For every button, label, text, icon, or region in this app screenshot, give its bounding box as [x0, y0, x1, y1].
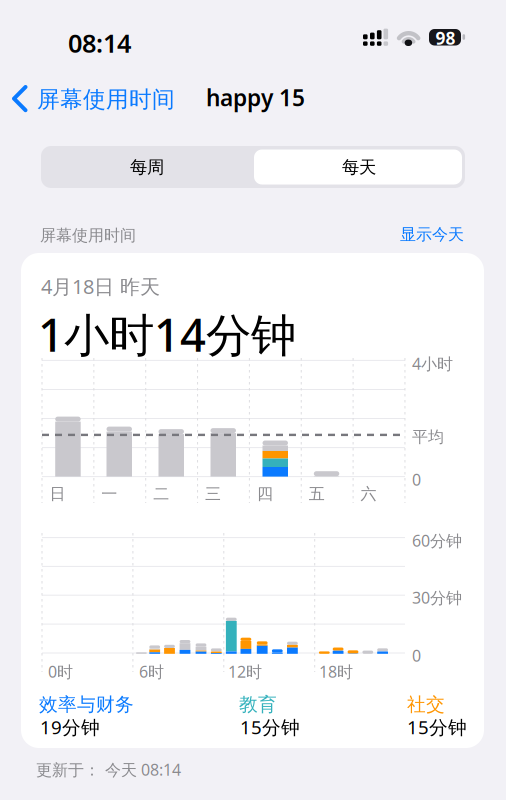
staticText: 三	[205, 484, 221, 504]
staticText: 社交	[407, 693, 445, 716]
staticText: 4月18日 昨天	[41, 273, 160, 300]
staticText: 0	[412, 469, 421, 490]
staticText: 每天	[342, 156, 376, 178]
button[interactable]: 每天	[0, 0, 506, 800]
staticText: 4小时	[412, 353, 453, 374]
staticText: 效率与财务	[39, 693, 134, 716]
staticText: 15分钟	[240, 714, 300, 739]
staticText: 屏幕使用时间	[37, 85, 175, 113]
staticText: 1小时14分钟	[38, 304, 296, 364]
staticText: 6时	[139, 661, 164, 682]
staticText: 12时	[228, 661, 262, 682]
staticText: 显示今天	[400, 224, 464, 244]
staticText: 一	[101, 484, 117, 504]
staticText: 教育	[239, 693, 277, 716]
staticText: 五	[309, 484, 325, 504]
staticText: 更新于： 今天 08:14	[36, 759, 181, 780]
staticText: 0时	[48, 661, 73, 682]
staticText: 日	[49, 484, 65, 504]
staticText: 98	[435, 26, 455, 49]
button[interactable]: 显示今天	[0, 0, 506, 800]
staticText: 19分钟	[40, 714, 100, 739]
button[interactable]: 每周	[0, 0, 506, 800]
staticText: 六	[361, 484, 377, 504]
staticText: 每周	[130, 156, 164, 178]
staticText: 二	[153, 484, 169, 504]
staticText: 15分钟	[407, 714, 467, 739]
staticText: happy 15	[206, 82, 305, 113]
staticText: 屏幕使用时间	[40, 225, 136, 245]
staticText: 四	[257, 484, 273, 504]
staticText: 0	[412, 645, 421, 666]
staticText: 18时	[319, 661, 353, 682]
button[interactable]: 屏幕使用时间	[0, 0, 506, 800]
staticText: 08:14	[68, 26, 131, 60]
staticText: 30分钟	[412, 587, 462, 608]
staticText: 60分钟	[412, 530, 462, 551]
staticText: 平均	[412, 427, 444, 447]
